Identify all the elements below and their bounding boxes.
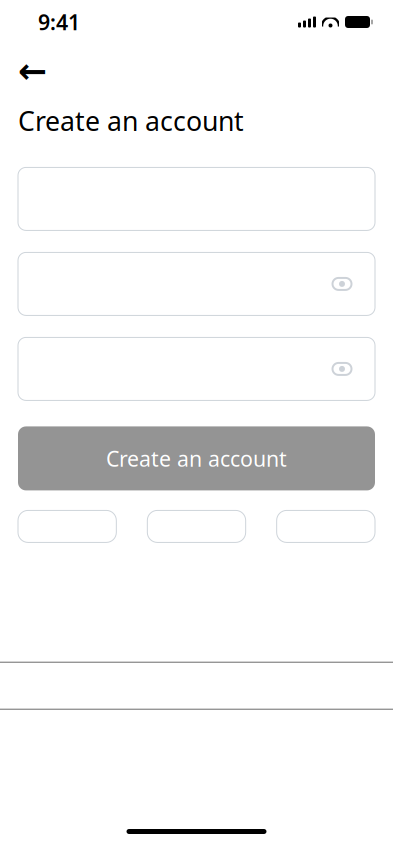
staticText: Create an account	[106, 444, 287, 472]
button[interactable]: Back	[18, 56, 52, 86]
staticText: 9:41	[38, 8, 80, 36]
button[interactable]: Show password	[325, 269, 359, 299]
button[interactable]: Option 1	[18, 510, 116, 542]
button[interactable]: Option 2	[147, 510, 246, 542]
staticText: ←	[18, 51, 47, 91]
button[interactable]: Create an account	[18, 426, 375, 490]
staticText: Create an account	[18, 103, 244, 138]
button[interactable]: Option 3	[277, 510, 375, 542]
button[interactable]: Show password	[325, 354, 359, 384]
